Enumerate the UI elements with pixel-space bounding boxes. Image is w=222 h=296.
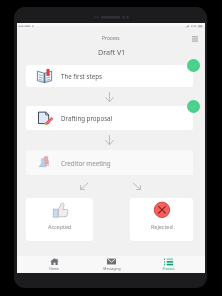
button[interactable]: Home xyxy=(25,256,83,273)
button[interactable]: Process xyxy=(140,256,197,273)
button[interactable]: Menu xyxy=(189,33,201,45)
staticText: Rejected xyxy=(151,223,173,230)
staticText: The first steps xyxy=(61,72,102,80)
staticText: Process xyxy=(162,266,175,271)
button[interactable]: Messaging xyxy=(83,256,140,273)
button[interactable]: Drafting proposal xyxy=(26,106,193,130)
staticText: Drafting proposal xyxy=(61,114,113,122)
button[interactable]: Completed xyxy=(187,59,200,72)
staticText: Messaging xyxy=(103,266,121,271)
button[interactable]: The first steps xyxy=(26,65,193,87)
button[interactable]: Creditor meeting xyxy=(26,150,193,175)
staticText: Home xyxy=(49,266,59,271)
button[interactable]: Accepted xyxy=(26,198,93,241)
staticText: Creditor meeting xyxy=(61,159,111,167)
staticText: Accepted xyxy=(48,223,72,230)
button[interactable]: Rejected xyxy=(130,198,193,241)
staticText: Process xyxy=(102,35,120,42)
button[interactable]: Completed xyxy=(187,100,200,113)
staticText: Draft V1 xyxy=(98,47,126,57)
